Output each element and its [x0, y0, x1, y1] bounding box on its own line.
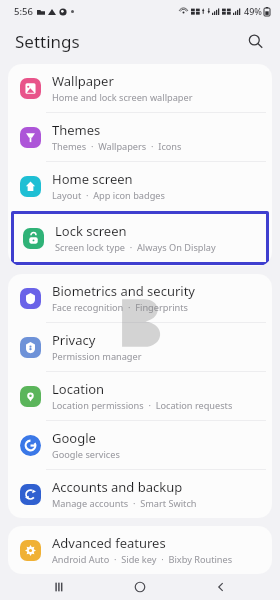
- button[interactable]: Home screen: [8, 162, 272, 210]
- staticText: Google: [52, 429, 96, 447]
- button[interactable]: Accounts and backup: [8, 470, 272, 518]
- staticText: Themes · Wallpapers · Icons: [52, 140, 182, 153]
- button[interactable]: Wallpaper: [8, 64, 272, 112]
- button[interactable]: Home: [118, 574, 162, 600]
- staticText: Home screen: [52, 170, 133, 188]
- staticText: Privacy: [52, 331, 96, 349]
- staticText: Home and lock screen wallpaper: [52, 91, 193, 104]
- staticText: Themes: [52, 121, 101, 139]
- staticText: 49%: [244, 5, 262, 17]
- button[interactable]: Google: [8, 421, 272, 469]
- staticText: Location permissions · Location requests: [52, 399, 233, 412]
- staticText: Accounts and backup: [52, 478, 183, 496]
- staticText: Location: [52, 380, 105, 398]
- staticText: Wallpaper: [52, 72, 114, 90]
- staticText: Biometrics and security: [52, 282, 196, 300]
- staticText: 5:56: [14, 5, 33, 18]
- staticText: Lock screen: [55, 222, 127, 240]
- button[interactable]: Biometrics and security: [8, 274, 272, 322]
- button[interactable]: Lock screen: [14, 214, 266, 262]
- staticText: Manage accounts · Smart Switch: [52, 497, 197, 510]
- button[interactable]: Themes: [8, 113, 272, 161]
- staticText: Android Auto · Side key · Bixby Routines: [52, 553, 233, 566]
- button[interactable]: Back: [199, 574, 243, 600]
- button[interactable]: Location: [8, 372, 272, 420]
- button[interactable]: Privacy: [8, 323, 272, 371]
- button[interactable]: Recent apps: [37, 574, 81, 600]
- staticText: Settings: [15, 30, 80, 53]
- staticText: Screen lock type · Always On Display: [55, 241, 216, 254]
- staticText: Layout · App icon badges: [52, 189, 165, 202]
- staticText: Advanced features: [52, 534, 166, 552]
- staticText: Permission manager: [52, 350, 142, 363]
- button[interactable]: Search: [242, 28, 268, 54]
- button[interactable]: Advanced features: [8, 526, 272, 574]
- staticText: Google services: [52, 448, 120, 461]
- staticText: Face recognition · Fingerprints: [52, 301, 188, 314]
